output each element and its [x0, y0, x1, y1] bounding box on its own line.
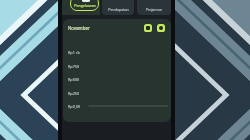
- button[interactable]: Pinjaman: [137, 0, 171, 15]
- staticText: Pinjaman: [146, 7, 162, 12]
- staticText: Rp0,00: [68, 104, 81, 109]
- button[interactable]: Chart type: [144, 24, 152, 32]
- button[interactable]: Contrast: [157, 24, 165, 32]
- staticText: Pendapatan: [108, 7, 129, 12]
- staticText: Rp500: [68, 77, 80, 82]
- button[interactable]: Pengeluaran: [62, 0, 100, 15]
- button[interactable]: Pendapatan: [102, 0, 134, 15]
- staticText: Rp1 rb: [68, 50, 80, 55]
- staticText: Rp250: [68, 91, 80, 96]
- staticText: November: [68, 25, 90, 31]
- staticText: Pengeluaran: [74, 3, 96, 8]
- staticText: Rp750: [68, 64, 80, 69]
